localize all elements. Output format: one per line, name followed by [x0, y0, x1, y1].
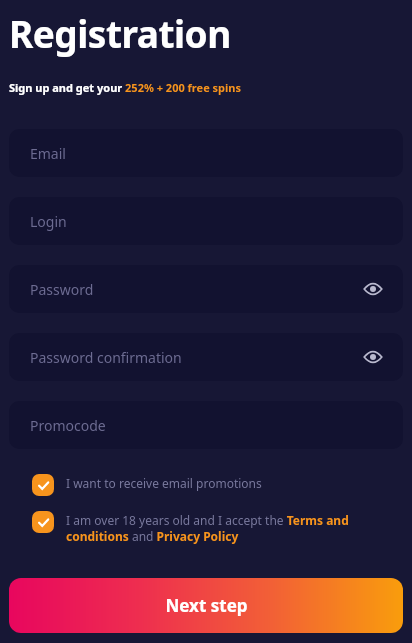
staticText: I am over 18 years old and I accept the …	[66, 512, 391, 545]
staticText: Password confirmation	[30, 348, 182, 367]
button[interactable]: Password confirmation	[9, 333, 403, 381]
staticText: Login	[30, 212, 67, 231]
button[interactable]: I am over 18 years old and I accept the …	[32, 510, 391, 545]
button[interactable]: Show password	[359, 343, 387, 371]
button[interactable]: Next step	[9, 578, 403, 633]
button[interactable]: Login	[9, 197, 403, 245]
staticText: Registration	[9, 8, 231, 58]
button[interactable]: Email	[9, 129, 403, 177]
button[interactable]: Password	[9, 265, 403, 313]
button[interactable]: Show password	[359, 275, 387, 303]
staticText: Next step	[165, 594, 248, 617]
staticText: Password	[30, 280, 94, 299]
staticText: Email	[30, 144, 66, 163]
staticText: Promocode	[30, 416, 106, 435]
button[interactable]: I want to receive email promotions	[32, 473, 391, 496]
staticText: Sign up and get your 252% + 200 free spi…	[9, 80, 241, 95]
staticText: I want to receive email promotions	[66, 475, 262, 491]
button[interactable]: Promocode	[9, 401, 403, 449]
